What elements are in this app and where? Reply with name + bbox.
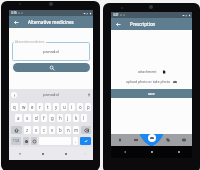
staticText: i [71, 104, 73, 110]
button[interactable]: p [85, 103, 91, 111]
button[interactable]: upload photo or take photo [111, 78, 192, 85]
staticText: t [47, 104, 49, 110]
staticText: y [55, 104, 58, 110]
staticText: k [75, 115, 78, 121]
staticText: attachment [138, 69, 157, 74]
button[interactable]: . [73, 137, 78, 145]
button[interactable]: s [24, 114, 31, 122]
button[interactable]: u [61, 103, 67, 111]
staticText: n [67, 127, 70, 133]
button[interactable]: w [20, 103, 27, 111]
button[interactable]: Take photo [148, 134, 156, 142]
button[interactable]: Hide keyboard [9, 147, 31, 160]
staticText: ?123 [13, 139, 20, 143]
button[interactable]: Emoji [23, 137, 29, 145]
staticText: m [74, 127, 79, 133]
button[interactable]: i [69, 103, 75, 111]
staticText: l [83, 115, 85, 121]
button[interactable]: z [24, 126, 31, 134]
staticText: Prescription [130, 21, 156, 27]
button[interactable]: Shift [11, 126, 22, 134]
button[interactable]: Recents [54, 147, 77, 160]
button[interactable]: q [11, 103, 18, 111]
staticText: d [35, 115, 38, 121]
button[interactable]: v [49, 126, 55, 134]
button[interactable]: Recents [165, 146, 192, 158]
button[interactable]: save [111, 89, 192, 98]
button[interactable]: d [33, 114, 39, 122]
button[interactable]: ?123 [11, 137, 21, 145]
button[interactable]: m [73, 126, 79, 134]
staticText: Alternative medicines [28, 19, 74, 25]
button[interactable]: n [65, 126, 71, 134]
button[interactable]: Home [31, 147, 54, 160]
button[interactable]: o [77, 103, 83, 111]
staticText: c [43, 127, 46, 133]
button[interactable]: Language [31, 137, 37, 145]
button[interactable]: r [37, 103, 43, 111]
staticText: q [13, 104, 16, 110]
button[interactable]: Crop [160, 134, 176, 146]
staticText: e [31, 104, 34, 110]
button[interactable]: k [73, 114, 79, 122]
staticText: . [75, 138, 77, 144]
staticText: g [51, 115, 54, 121]
staticText: r [39, 104, 41, 110]
staticText: p [87, 104, 90, 110]
staticText: upload photo or take photo [126, 79, 170, 84]
button[interactable]: More suggestions [11, 92, 17, 98]
button[interactable]: Adjust [176, 134, 192, 146]
button[interactable]: t [45, 103, 51, 111]
staticText: Alternative medicines [15, 40, 45, 44]
button[interactable]: b [57, 126, 63, 134]
button[interactable]: Back [111, 146, 138, 158]
staticText: b [59, 127, 62, 133]
button[interactable]: Backspace [81, 126, 91, 134]
staticText: s [26, 115, 29, 121]
staticText: panadol [43, 92, 60, 98]
staticText: h [59, 115, 62, 121]
staticText: z [26, 127, 29, 133]
staticText: f [43, 115, 45, 121]
button[interactable] [12, 42, 90, 61]
staticText: 3:16 [11, 11, 17, 15]
button[interactable]: Home [138, 146, 165, 158]
staticText: x [35, 127, 38, 133]
button[interactable]: a [15, 114, 22, 122]
button[interactable]: Delete [111, 134, 128, 146]
button[interactable]: Back [111, 18, 125, 30]
button[interactable]: Gallery [128, 134, 144, 146]
button[interactable]: Back [9, 16, 23, 28]
staticText: save [148, 92, 155, 96]
button[interactable]: attachment [111, 68, 192, 75]
button[interactable]: f [41, 114, 47, 122]
button[interactable]: e [29, 103, 35, 111]
button[interactable]: x [33, 126, 39, 134]
staticText: o [79, 104, 82, 110]
other: Voice input [87, 93, 91, 97]
staticText: u [63, 104, 66, 110]
staticText: j [67, 115, 69, 121]
button[interactable]: c [41, 126, 47, 134]
staticText: w [22, 104, 26, 110]
button[interactable]: y [53, 103, 59, 111]
staticText: v [51, 127, 54, 133]
button[interactable]: l [81, 114, 87, 122]
staticText: 3:21 [113, 13, 119, 17]
button[interactable]: g [49, 114, 55, 122]
staticText: panadol [43, 49, 60, 55]
button[interactable]: Enter [80, 137, 91, 145]
button[interactable]: j [65, 114, 71, 122]
button[interactable]: Search [13, 63, 90, 72]
staticText: a [17, 115, 20, 121]
button[interactable]: h [57, 114, 63, 122]
